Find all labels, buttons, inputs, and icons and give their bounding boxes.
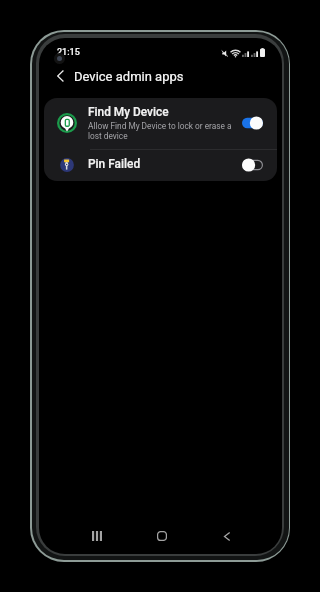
button[interactable]: Recent apps — [75, 518, 119, 554]
button[interactable]: Home — [140, 518, 184, 554]
staticText: Find My Device — [88, 105, 169, 119]
button[interactable]: Pin Failed — [44, 150, 277, 181]
staticText: 21:15 — [57, 47, 80, 58]
button[interactable]: Find My Device — [44, 98, 277, 149]
staticText: Pin Failed — [88, 157, 242, 171]
button[interactable]: Navigate up — [39, 59, 82, 93]
button[interactable]: Switch off — [242, 158, 263, 172]
staticText: Allow Find My Device to lock or erase a … — [88, 121, 236, 141]
button[interactable]: Switch on — [242, 116, 263, 130]
staticText: Device admin apps — [74, 69, 184, 84]
button[interactable]: Back — [205, 518, 249, 554]
